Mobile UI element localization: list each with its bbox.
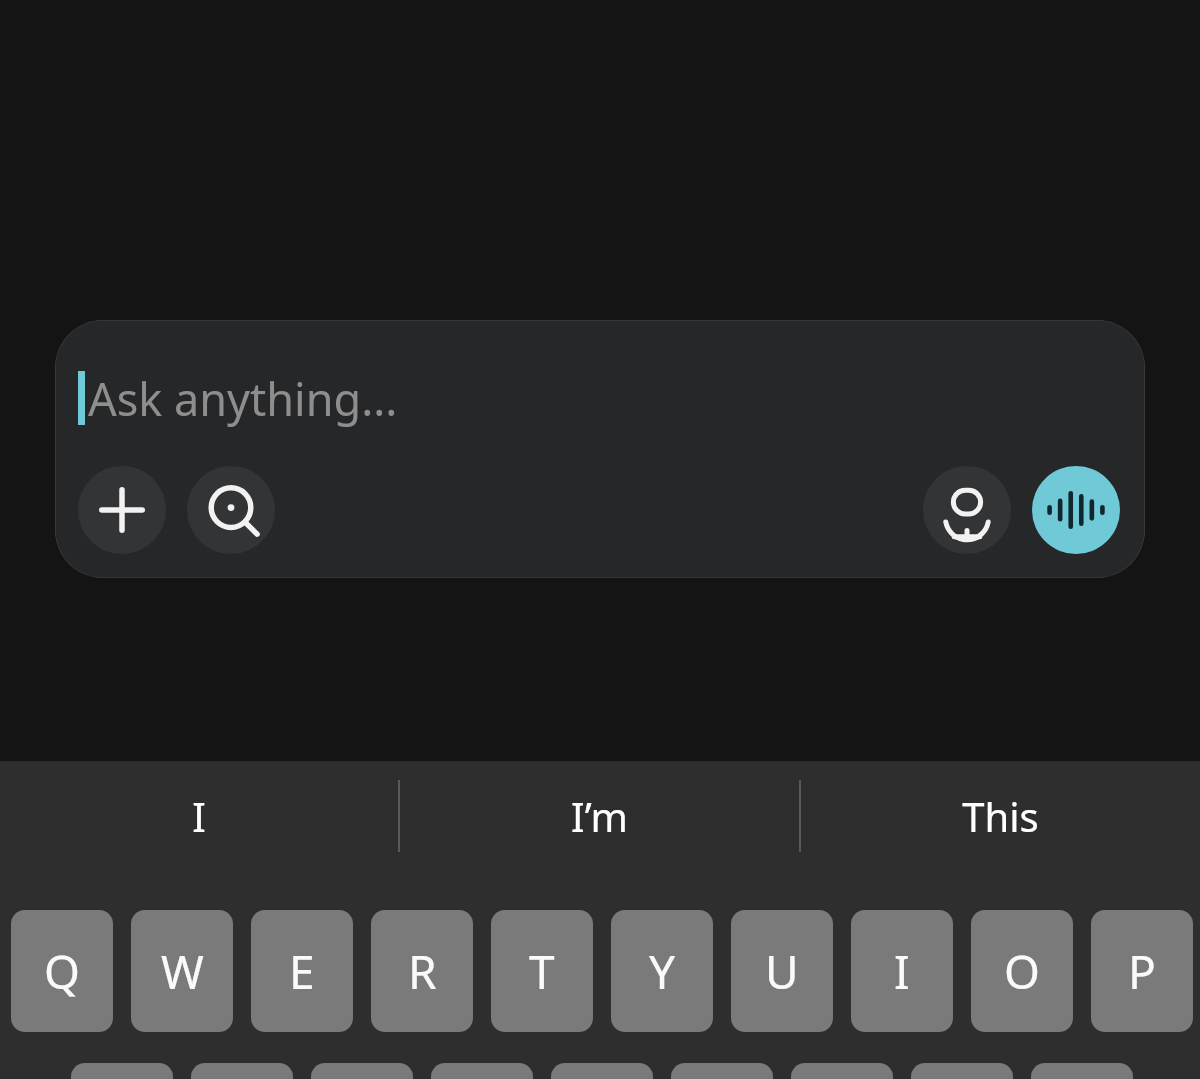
staticText: I (192, 789, 206, 843)
button[interactable]: T (491, 910, 593, 1032)
staticText: I (894, 940, 910, 1003)
staticText: R (408, 940, 437, 1003)
button[interactable]: R (371, 910, 473, 1032)
button[interactable] (191, 1063, 293, 1079)
button[interactable] (911, 1063, 1013, 1079)
staticText: W (161, 940, 204, 1003)
staticText: Ask anything... (88, 368, 398, 429)
button[interactable]: Add attachment (78, 466, 166, 554)
staticText: U (765, 940, 799, 1003)
staticText: This (962, 789, 1039, 843)
button[interactable]: Search (187, 466, 275, 554)
button[interactable] (71, 1063, 173, 1079)
button[interactable]: U (731, 910, 833, 1032)
staticText: I’m (571, 789, 628, 843)
button[interactable] (1031, 1063, 1133, 1079)
button[interactable] (431, 1063, 533, 1079)
staticText: Q (44, 940, 80, 1003)
staticText: O (1004, 940, 1040, 1003)
button[interactable]: I (0, 761, 398, 871)
button[interactable]: Live voice (1032, 466, 1120, 554)
button[interactable] (671, 1063, 773, 1079)
button[interactable] (311, 1063, 413, 1079)
button[interactable]: E (251, 910, 353, 1032)
button[interactable]: Voice input (923, 466, 1011, 554)
button[interactable] (551, 1063, 653, 1079)
staticText: Y (649, 940, 676, 1003)
button[interactable]: I’m (400, 761, 799, 871)
button[interactable]: Q (11, 910, 113, 1032)
button[interactable]: O (971, 910, 1073, 1032)
staticText: E (289, 940, 315, 1003)
button[interactable]: W (131, 910, 233, 1032)
staticText: P (1128, 940, 1156, 1003)
button[interactable]: Y (611, 910, 713, 1032)
staticText: T (529, 940, 555, 1003)
button[interactable]: Ask anything... (55, 320, 1145, 578)
button[interactable] (791, 1063, 893, 1079)
button[interactable]: I (851, 910, 953, 1032)
button[interactable]: P (1091, 910, 1193, 1032)
button[interactable]: This (801, 761, 1200, 871)
